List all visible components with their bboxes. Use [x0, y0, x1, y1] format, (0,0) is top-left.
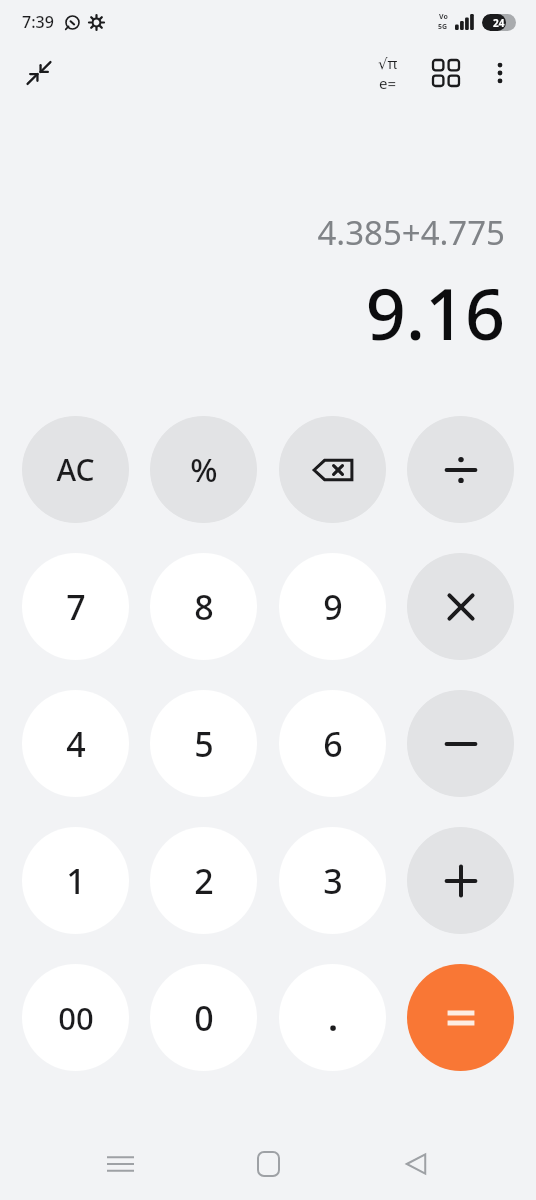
staticText: AC	[56, 449, 95, 490]
button[interactable]: %	[150, 416, 257, 523]
staticText: 1	[66, 858, 86, 904]
button[interactable]: 5	[150, 690, 257, 797]
button[interactable]: 3	[279, 827, 386, 934]
staticText: 00	[58, 997, 94, 1039]
button[interactable]: 4	[22, 690, 129, 797]
button[interactable]: Plus	[407, 827, 514, 934]
button[interactable]: Collapse	[14, 48, 64, 98]
staticText: Vo	[439, 12, 448, 22]
button[interactable]: Scientific mode	[362, 47, 414, 99]
button[interactable]: Multiply	[407, 553, 514, 660]
button[interactable]: Equals	[407, 964, 514, 1071]
staticText: 3	[323, 858, 343, 904]
button[interactable]: 6	[279, 690, 386, 797]
staticText: 9.16	[365, 265, 505, 360]
staticText: 9	[323, 584, 343, 630]
staticText: .	[328, 995, 338, 1041]
button[interactable]: Converter	[420, 47, 472, 99]
button[interactable]: Recent apps	[92, 1136, 148, 1192]
staticText: 6	[323, 721, 343, 767]
staticText: 7:39	[22, 11, 54, 33]
staticText: 5	[194, 721, 214, 767]
staticText: e=	[379, 73, 397, 93]
button[interactable]: Backspace	[279, 416, 386, 523]
button[interactable]: Minus	[407, 690, 514, 797]
staticText: 4	[66, 721, 86, 767]
button[interactable]: Home	[240, 1136, 296, 1192]
staticText: 0	[194, 995, 214, 1041]
button[interactable]: 1	[22, 827, 129, 934]
staticText: %	[190, 448, 218, 492]
button[interactable]: More options	[474, 47, 526, 99]
staticText: 5G	[438, 22, 448, 32]
button[interactable]: 9	[279, 553, 386, 660]
button[interactable]: .	[279, 964, 386, 1071]
staticText: √π	[378, 53, 398, 73]
button[interactable]: 0	[150, 964, 257, 1071]
button[interactable]: 2	[150, 827, 257, 934]
button[interactable]: AC	[22, 416, 129, 523]
button[interactable]: 00	[22, 964, 129, 1071]
staticText: 8	[194, 584, 214, 630]
button[interactable]: Back	[388, 1136, 444, 1192]
button[interactable]: 7	[22, 553, 129, 660]
staticText: 4.385+4.775	[317, 210, 505, 255]
button[interactable]: Divide	[407, 416, 514, 523]
staticText: 24	[493, 16, 505, 30]
button[interactable]: 8	[150, 553, 257, 660]
staticText: 7	[66, 584, 86, 630]
staticText: 2	[194, 858, 214, 904]
